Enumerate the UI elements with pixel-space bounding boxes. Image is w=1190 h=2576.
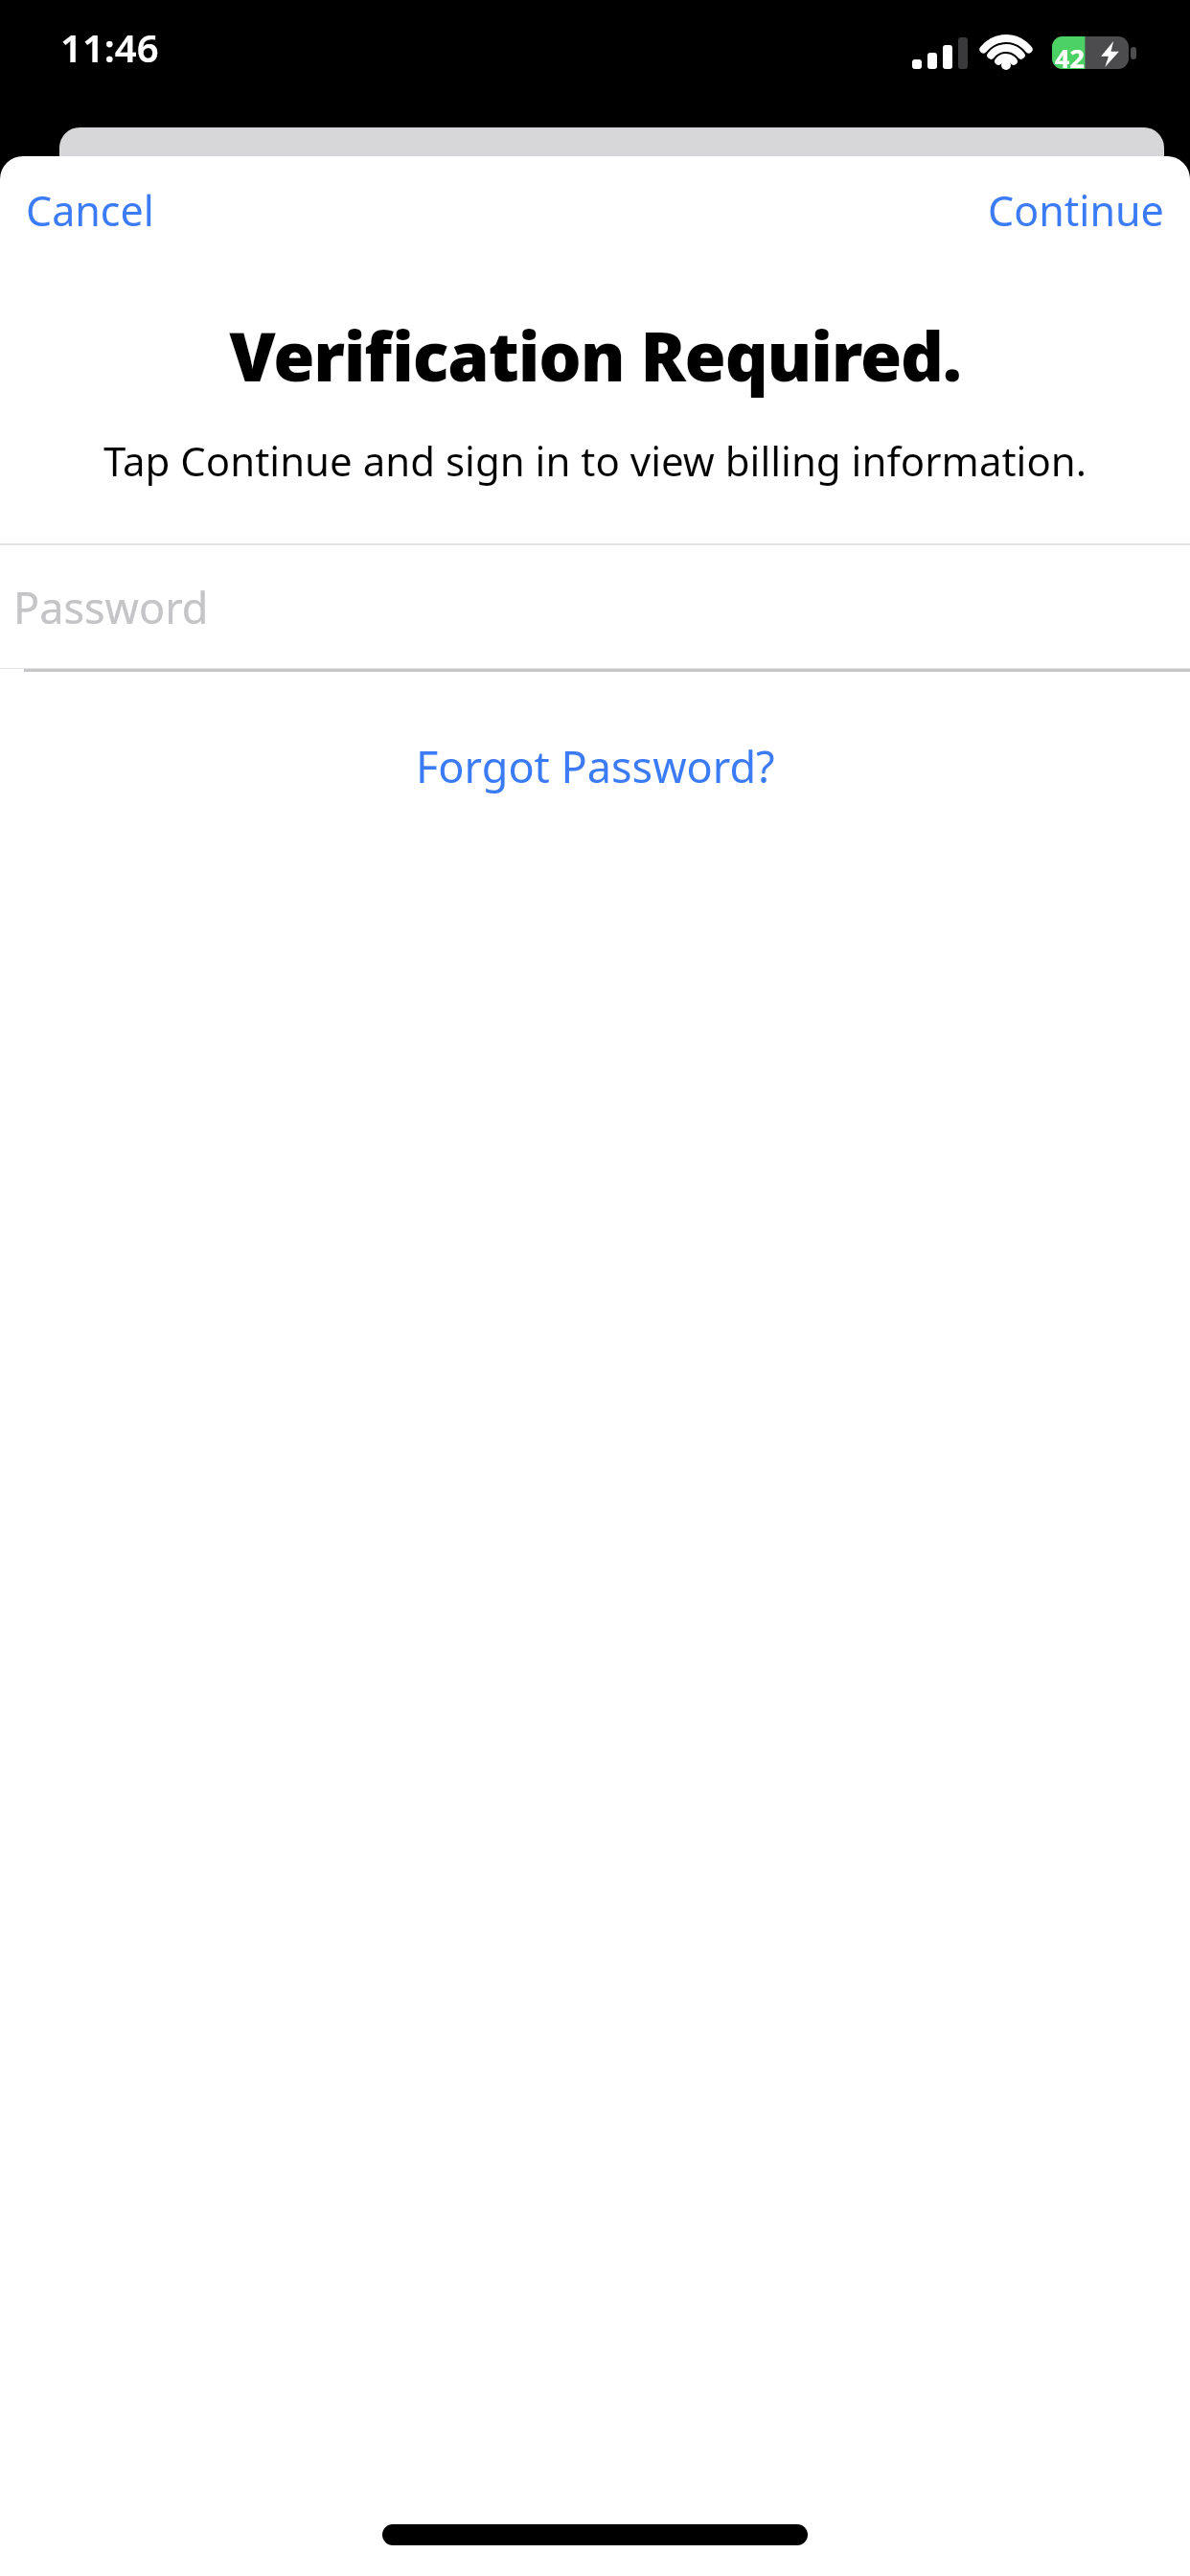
staticText: Continue [988,182,1164,239]
staticText: Forgot Password? [416,737,775,795]
button[interactable]: Forgot Password? [391,724,800,809]
button[interactable]: Continue [970,167,1182,254]
other: Home indicator [382,2524,808,2545]
button[interactable]: Cancel [8,167,172,254]
staticText: Verification Required. [19,310,1171,401]
staticText: 42 [1055,40,1085,76]
staticText: Tap Continue and sign in to view billing… [96,433,1094,488]
staticText: 11:46 [60,21,159,73]
staticText: Password [13,578,209,636]
staticText: Cancel [26,182,154,239]
button[interactable]: Password [0,545,1190,668]
